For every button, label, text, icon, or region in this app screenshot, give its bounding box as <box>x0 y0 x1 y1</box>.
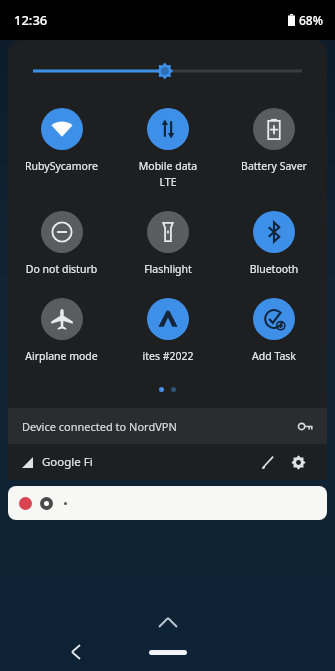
button[interactable]: Add Task <box>221 296 327 365</box>
button[interactable]: RubySycamore <box>8 106 115 175</box>
staticText: Add Task <box>221 349 327 363</box>
staticText: ites #2022 <box>115 349 221 363</box>
button[interactable] <box>8 486 327 520</box>
button[interactable]: ites #2022 <box>115 296 221 365</box>
staticText: Do not disturb <box>8 262 115 276</box>
staticText: Airplane mode <box>8 349 115 363</box>
staticText: LTE <box>115 175 221 189</box>
staticText: Bluetooth <box>221 262 327 276</box>
staticText: Flashlight <box>115 262 221 276</box>
button[interactable]: Battery Saver <box>221 106 327 175</box>
button[interactable]: Device connected to NordVPN <box>8 408 327 444</box>
staticText: RubySycamore <box>8 159 115 173</box>
button[interactable]: Edit <box>253 447 283 477</box>
staticText: 12:36 <box>14 11 48 29</box>
button[interactable]: Home <box>149 650 187 655</box>
staticText: Battery Saver <box>221 159 327 173</box>
staticText: Google Fi <box>42 454 253 470</box>
button[interactable]: Expand <box>0 611 335 633</box>
staticText: 68% <box>299 12 323 28</box>
staticText: Mobile data <box>115 159 221 173</box>
button[interactable]: Settings <box>283 447 313 477</box>
button[interactable]: Do not disturb <box>8 209 115 278</box>
button[interactable]: Flashlight <box>115 209 221 278</box>
staticText: Device connected to NordVPN <box>22 419 298 434</box>
button[interactable]: Bluetooth <box>221 209 327 278</box>
button[interactable]: Mobile data <box>115 106 221 191</box>
button[interactable]: Airplane mode <box>8 296 115 365</box>
button[interactable]: Back <box>62 638 90 666</box>
button[interactable]: Brightness <box>33 58 302 84</box>
